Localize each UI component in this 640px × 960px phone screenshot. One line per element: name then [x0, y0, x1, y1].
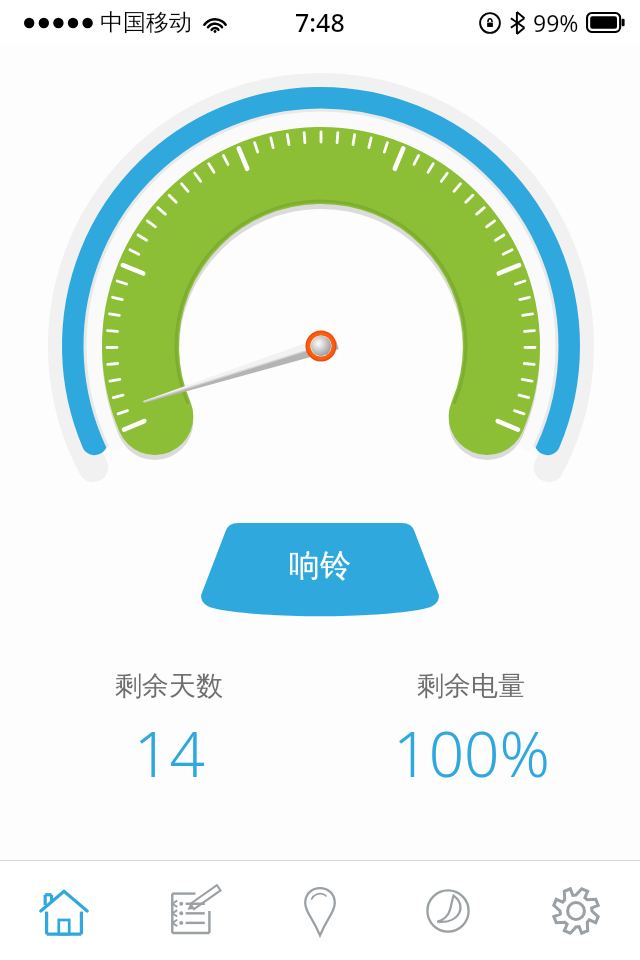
- button[interactable]: 剩余天数: [29, 669, 309, 795]
- staticText: 99%: [533, 7, 579, 38]
- button[interactable]: Settings: [512, 861, 640, 960]
- staticText: 响铃: [289, 546, 351, 585]
- button[interactable]: Sleep: [384, 861, 512, 960]
- staticText: 中国移动: [100, 8, 192, 37]
- staticText: 7:48: [295, 5, 345, 39]
- button[interactable]: Tasks: [128, 861, 256, 960]
- button[interactable]: Home: [0, 861, 128, 960]
- staticText: 剩余电量: [417, 669, 525, 703]
- button[interactable]: Location: [256, 861, 384, 960]
- staticText: 剩余天数: [115, 669, 223, 703]
- staticText: 100%: [393, 711, 550, 795]
- staticText: 14: [134, 711, 205, 795]
- button[interactable]: 响铃: [200, 523, 440, 615]
- button[interactable]: 剩余电量: [331, 669, 611, 795]
